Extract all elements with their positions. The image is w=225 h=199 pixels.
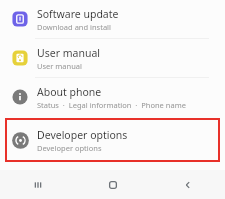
staticText: About phone (37, 85, 102, 99)
button[interactable]: Developer options (5, 118, 220, 162)
staticText: Status · Legal information · Phone name (37, 100, 186, 110)
staticText: User manual (37, 46, 100, 60)
staticText: Download and install (37, 22, 111, 32)
button[interactable]: Home (75, 170, 150, 199)
button[interactable]: User manual (0, 39, 225, 77)
button[interactable]: Software update (0, 0, 225, 38)
staticText: Software update (37, 7, 119, 21)
button[interactable]: Back (150, 170, 225, 199)
staticText: User manual (37, 61, 82, 71)
staticText: Developer options (37, 128, 128, 142)
button[interactable]: Recents (0, 170, 75, 199)
staticText: Developer options (37, 143, 102, 153)
button[interactable]: About phone (0, 78, 225, 116)
